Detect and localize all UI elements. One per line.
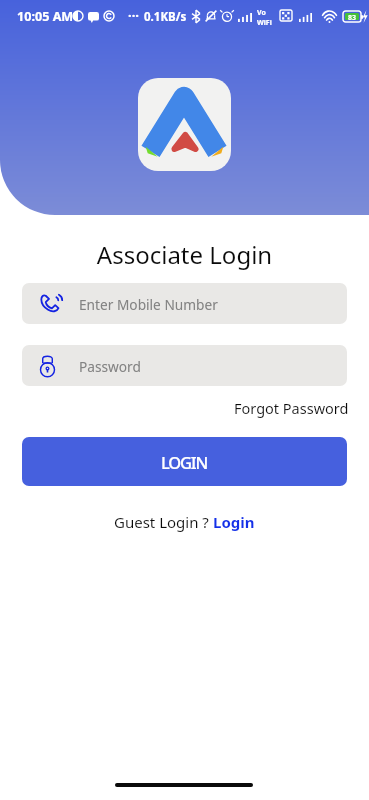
staticText: Forgot Password <box>234 398 349 418</box>
button[interactable]: Password <box>22 345 347 386</box>
other: Phone <box>40 293 62 314</box>
staticText: Vo <box>257 8 266 18</box>
staticText: Password <box>79 357 141 376</box>
button[interactable]: Phone <box>22 283 347 324</box>
staticText: 0.1KB/s <box>144 9 187 25</box>
staticText: Login <box>213 512 255 532</box>
staticText: LOGIN <box>161 451 208 473</box>
staticText: 83 <box>348 13 357 20</box>
other: Password <box>40 355 55 377</box>
staticText: Associate Login <box>0 238 369 271</box>
button[interactable]: Forgot Password <box>234 398 349 418</box>
button[interactable]: Login <box>213 512 255 532</box>
staticText: 10:05 AM <box>17 8 74 25</box>
staticText: WiFi <box>257 18 272 28</box>
button[interactable]: LOGIN <box>22 437 347 486</box>
staticText: Guest Login ? <box>114 512 213 532</box>
staticText: ··· <box>128 6 139 24</box>
staticText: Enter Mobile Number <box>79 295 218 314</box>
